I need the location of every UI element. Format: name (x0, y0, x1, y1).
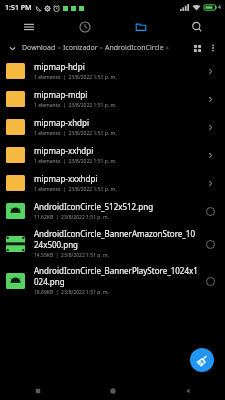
staticText: 14.55KB | 23/8/2022 1:51 p. m. (34, 252, 110, 259)
button[interactable]: mipmap-hdpi (0, 57, 225, 85)
button[interactable]: Select file (203, 274, 217, 288)
staticText: 11.62KB | 23/8/2022 1:51 p. m. (34, 214, 110, 221)
button[interactable]: Recents (0, 382, 75, 400)
staticText: mipmap-xxhdpi (34, 145, 94, 156)
button[interactable]: Download (22, 43, 56, 53)
button[interactable]: AndroidIconCircle_512x512.png (0, 197, 225, 225)
staticText: 1 elemento | 23/8/2022 1:51 p. m. (34, 102, 117, 109)
button[interactable]: Menu (0, 15, 57, 38)
button[interactable]: Collapse path (5, 41, 19, 55)
staticText: AndroidIconCircle_512x512.png (34, 201, 154, 212)
staticText: Iconizador (63, 43, 98, 53)
button[interactable]: Search (169, 15, 225, 38)
button[interactable]: Recent (57, 15, 113, 38)
staticText: > (98, 44, 105, 52)
button[interactable]: AndroidIconCircle_BannerPlayStore_1024x1… (0, 262, 225, 299)
staticText: 18.69KB | 23/8/2022 1:51 p. m. (34, 289, 110, 296)
staticText: AndroidIconCircle_BannerAmazonStore_1024… (34, 228, 199, 250)
button[interactable]: More options (206, 41, 220, 55)
button[interactable]: Home (75, 382, 150, 400)
button[interactable]: mipmap-xxhdpi (0, 141, 225, 169)
button[interactable]: AndroidIconCircle_BannerAmazonStore_1024… (0, 225, 225, 262)
staticText: mipmap-xhdpi (34, 117, 90, 128)
button[interactable]: Select file (203, 204, 217, 218)
staticText: 1 elemento | 23/8/2022 1:51 p. m. (34, 186, 117, 193)
staticText: > (56, 44, 63, 52)
staticText: > (164, 44, 171, 52)
staticText: mipmap-mdpi (34, 89, 88, 100)
button[interactable]: AndroidIconCircle (105, 43, 164, 53)
staticText: 1 elemento | 23/8/2022 1:51 p. m. (34, 74, 117, 81)
staticText: 1 elemento | 23/8/2022 1:51 p. m. (34, 158, 117, 165)
staticText: AndroidIconCircle (105, 43, 164, 53)
button[interactable]: Select file (203, 237, 217, 251)
button[interactable]: mipmap-mdpi (0, 85, 225, 113)
staticText: 4 (218, 4, 221, 11)
staticText: mipmap-hdpi (34, 61, 85, 72)
staticText: 1 elemento | 23/8/2022 1:51 p. m. (34, 130, 117, 137)
staticText: 1:51 PM (5, 3, 32, 13)
button[interactable]: Grid view (190, 41, 204, 55)
button[interactable]: mipmap-xhdpi (0, 113, 225, 141)
staticText: mipmap-xxxhdpi (34, 173, 98, 184)
button[interactable]: Back (150, 382, 225, 400)
button[interactable]: Clean up (190, 348, 214, 372)
staticText: AndroidIconCircle_BannerPlayStore_1024x1… (34, 265, 199, 287)
button[interactable]: Files (113, 15, 169, 38)
button[interactable]: Iconizador (63, 43, 98, 53)
button[interactable]: mipmap-xxxhdpi (0, 169, 225, 197)
staticText: Download (22, 43, 56, 53)
